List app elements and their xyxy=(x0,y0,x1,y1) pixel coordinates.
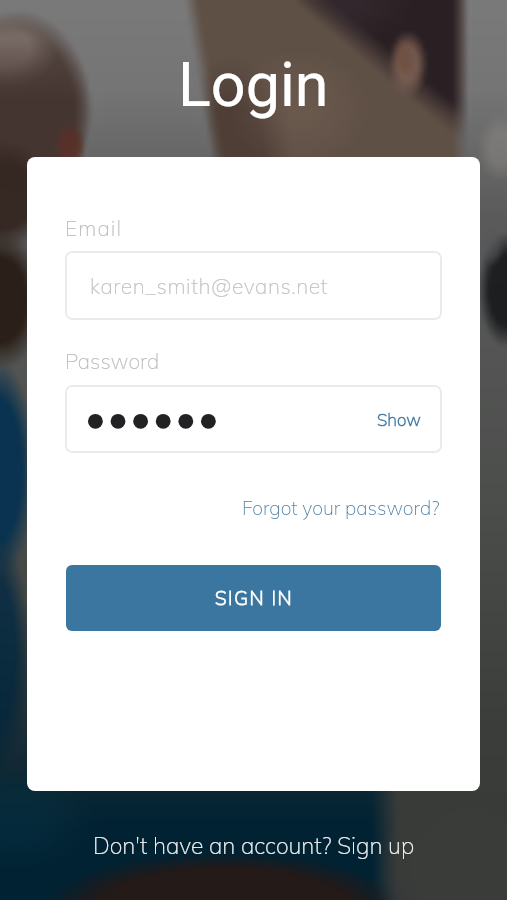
staticText: Login xyxy=(178,49,329,120)
button[interactable]: Show xyxy=(377,409,421,430)
staticText: SIGN IN xyxy=(215,586,294,610)
staticText: Password xyxy=(65,348,160,374)
button[interactable]: SIGN IN xyxy=(66,565,441,631)
button[interactable]: Forgot your password? xyxy=(242,496,440,520)
staticText: Email xyxy=(65,215,123,241)
staticText: karen_smith@evans.net xyxy=(90,273,328,299)
button[interactable]: Don't have an account? Sign up xyxy=(93,831,415,860)
button[interactable]: karen_smith@evans.net xyxy=(65,251,442,320)
